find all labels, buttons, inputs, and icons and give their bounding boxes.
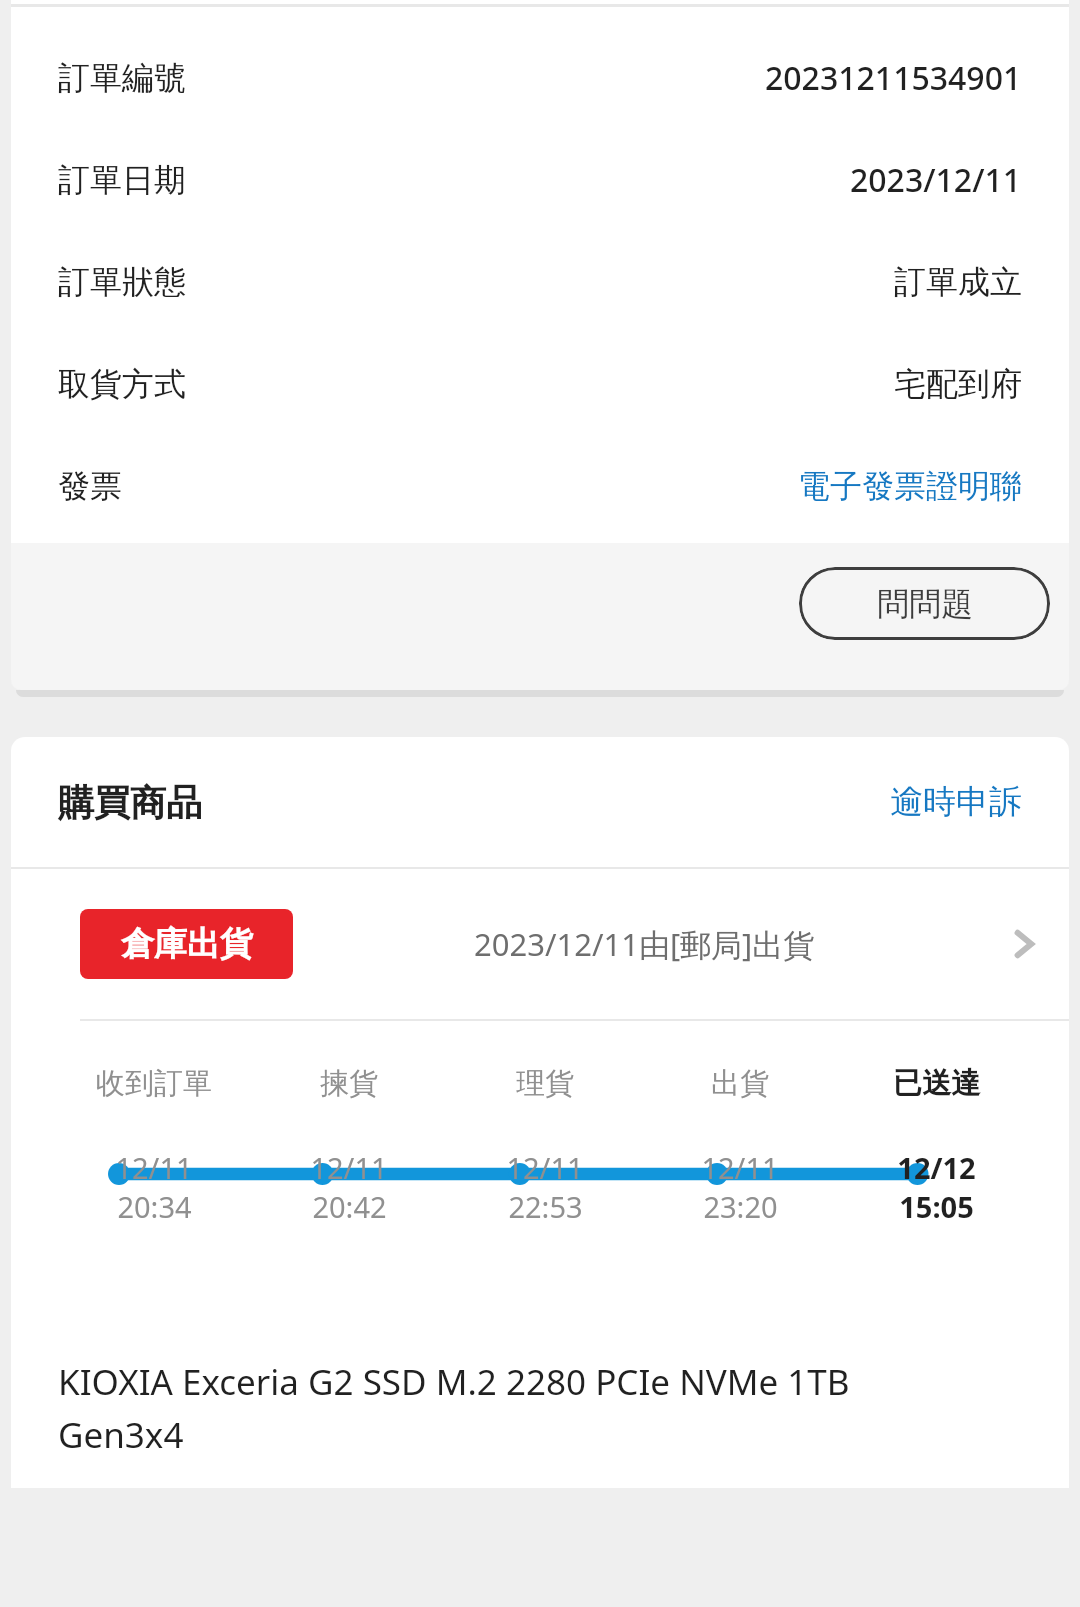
- staticText: 23:20: [703, 1187, 778, 1226]
- button[interactable]: 問問題: [799, 567, 1050, 640]
- staticText: 訂單成立: [894, 262, 1022, 302]
- staticText: 逾時申訴: [890, 781, 1022, 823]
- button[interactable]: 逾時申訴: [890, 781, 1022, 823]
- staticText: 22:53: [508, 1187, 583, 1226]
- staticText: 15:05: [899, 1187, 974, 1226]
- staticText: 問問題: [877, 584, 973, 624]
- staticText: 訂單編號: [58, 58, 186, 98]
- staticText: KIOXIA Exceria G2 SSD M.2 2280 PCIe NVMe…: [58, 1358, 969, 1458]
- staticText: 訂單日期: [58, 160, 186, 200]
- staticText: 理貨: [516, 1065, 574, 1102]
- staticText: 出貨: [711, 1065, 769, 1102]
- staticText: 2023/12/11: [850, 158, 1022, 202]
- staticText: 2023/12/11由[郵局]出貨: [474, 923, 815, 965]
- staticText: 20231211534901: [765, 56, 1022, 100]
- staticText: 12/11: [310, 1148, 388, 1187]
- staticText: 倉庫出貨: [121, 923, 253, 965]
- staticText: 發票: [58, 466, 122, 506]
- staticText: 20:34: [117, 1187, 192, 1226]
- staticText: 揀貨: [320, 1065, 378, 1102]
- staticText: 12/11: [701, 1148, 779, 1187]
- staticText: 宅配到府: [894, 364, 1022, 404]
- button[interactable]: 倉庫出貨: [11, 869, 1069, 1019]
- staticText: 購買商品: [58, 780, 202, 825]
- staticText: 12/11: [506, 1148, 584, 1187]
- staticText: 訂單狀態: [58, 262, 186, 302]
- staticText: 已送達: [893, 1065, 980, 1102]
- staticText: 12/11: [115, 1148, 193, 1187]
- staticText: 電子發票證明聯: [798, 466, 1022, 506]
- staticText: 收到訂單: [96, 1065, 212, 1102]
- staticText: 12/12: [897, 1148, 976, 1187]
- other: 查看出貨詳情: [994, 914, 1054, 974]
- staticText: 20:42: [312, 1187, 387, 1226]
- staticText: 取貨方式: [58, 364, 186, 404]
